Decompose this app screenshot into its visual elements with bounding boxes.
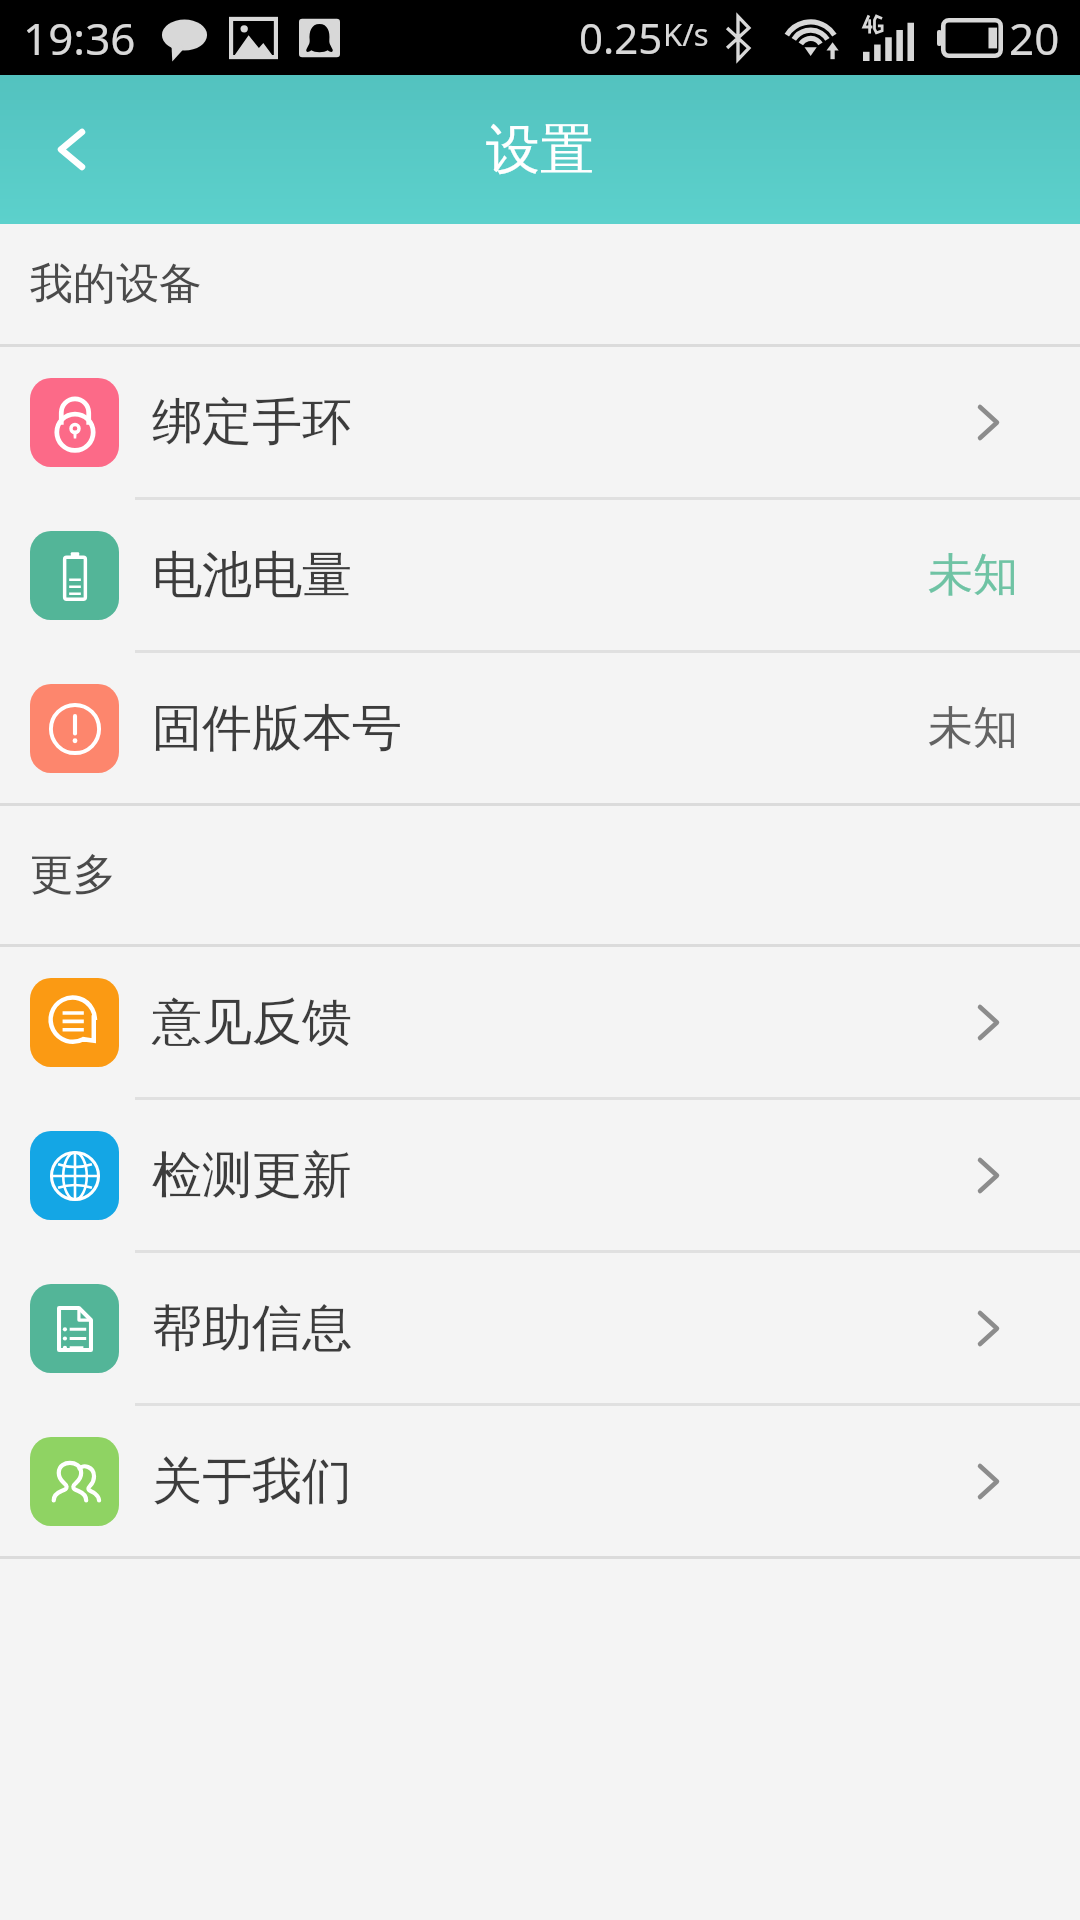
staticText: 固件版本号 — [152, 697, 402, 760]
staticText: 绑定手环 — [152, 391, 352, 454]
button[interactable]: 固件版本号 — [0, 653, 1080, 803]
staticText: 更多 — [30, 848, 116, 902]
button[interactable]: 意见反馈 — [0, 947, 1080, 1097]
staticText: 检测更新 — [152, 1144, 352, 1207]
staticText: 未知 — [928, 547, 1018, 604]
staticText: 0.25 — [579, 9, 663, 66]
staticText: 关于我们 — [152, 1450, 352, 1513]
staticText: 未知 — [928, 700, 1018, 757]
staticText: 20 — [1009, 8, 1060, 68]
button[interactable]: 检测更新 — [0, 1100, 1080, 1250]
button[interactable]: Back — [0, 75, 142, 224]
staticText: 电池电量 — [152, 544, 352, 607]
staticText: 我的设备 — [30, 257, 202, 311]
staticText: 19:36 — [23, 8, 136, 68]
button[interactable]: 帮助信息 — [0, 1253, 1080, 1403]
staticText: 帮助信息 — [152, 1297, 352, 1360]
button[interactable]: 关于我们 — [0, 1406, 1080, 1556]
staticText: K/s — [663, 13, 709, 55]
staticText: 设置 — [486, 116, 594, 184]
button[interactable]: 电池电量 — [0, 500, 1080, 650]
button[interactable]: 绑定手环 — [0, 347, 1080, 497]
staticText: 意见反馈 — [152, 991, 352, 1054]
